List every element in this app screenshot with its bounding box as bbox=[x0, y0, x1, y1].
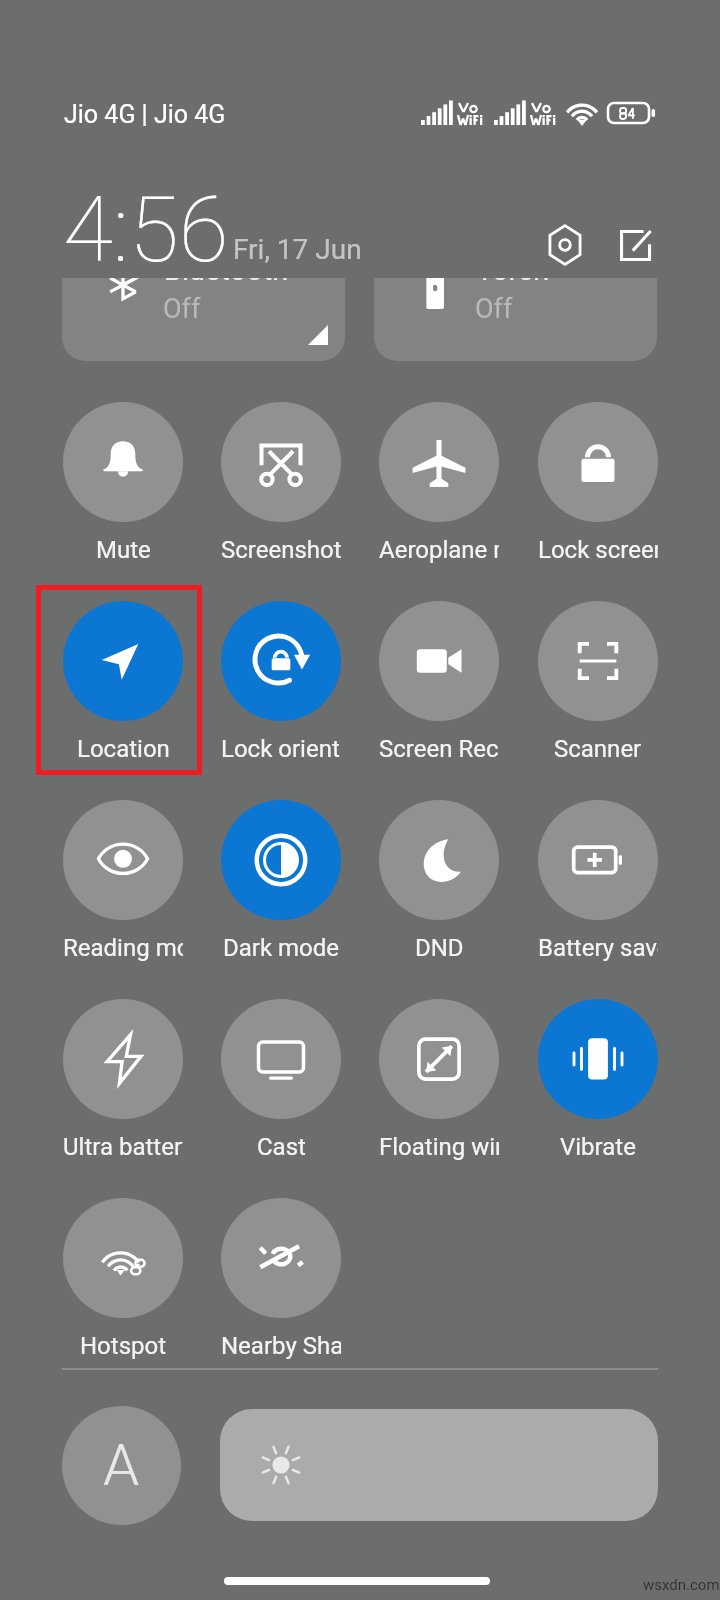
staticText: Scanner bbox=[554, 735, 642, 763]
button[interactable]: Hotspot bbox=[63, 1198, 183, 1360]
staticText: Bluetooth bbox=[164, 278, 289, 287]
button[interactable]: Screenshot bbox=[221, 402, 341, 564]
staticText: Screenshot bbox=[221, 536, 341, 564]
staticText: 4:56 bbox=[63, 177, 229, 284]
button[interactable]: Lock screen bbox=[538, 402, 658, 564]
staticText: Nearby Share bbox=[221, 1332, 341, 1360]
staticText: Lock screen bbox=[538, 536, 658, 564]
button[interactable]: Cast bbox=[221, 999, 341, 1161]
staticText: Fri, 17 Jun bbox=[233, 233, 362, 266]
button[interactable]: Dark mode bbox=[221, 800, 341, 962]
staticText: Lock orientation bbox=[221, 735, 341, 763]
button[interactable]: Settings bbox=[537, 217, 593, 273]
staticText: Dark mode bbox=[223, 934, 340, 962]
staticText: Off bbox=[163, 293, 201, 325]
staticText: Ultra battery saver bbox=[63, 1133, 183, 1161]
staticText: Battery saver bbox=[538, 934, 658, 962]
button[interactable]: Battery saver bbox=[538, 800, 658, 962]
button[interactable]: Lock orientation bbox=[221, 601, 341, 763]
staticText: Location bbox=[77, 735, 170, 763]
button[interactable]: Auto brightness bbox=[62, 1406, 181, 1525]
staticText: Jio 4G | Jio 4G bbox=[64, 100, 226, 129]
button[interactable]: Ultra battery saver bbox=[63, 999, 183, 1161]
staticText: Off bbox=[475, 293, 513, 325]
button[interactable]: Scanner bbox=[538, 601, 658, 763]
staticText: wsxdn.com bbox=[643, 1576, 720, 1594]
button[interactable]: Edit bbox=[607, 217, 663, 273]
button[interactable]: Bluetooth bbox=[62, 278, 345, 361]
button[interactable]: Aeroplane mode bbox=[379, 402, 499, 564]
button[interactable]: Vibrate bbox=[538, 999, 658, 1161]
staticText: Vibrate bbox=[560, 1133, 636, 1161]
staticText: Aeroplane mode bbox=[379, 536, 499, 564]
button[interactable]: Screen Recorder bbox=[379, 601, 499, 763]
staticText: Floating windows bbox=[379, 1133, 499, 1161]
button[interactable]: Nearby Share bbox=[221, 1198, 341, 1360]
staticText: Reading mode bbox=[63, 934, 183, 962]
button[interactable]: Torch bbox=[374, 278, 657, 361]
button[interactable]: Location bbox=[63, 601, 183, 763]
staticText: Torch bbox=[476, 278, 550, 287]
staticText: Hotspot bbox=[80, 1332, 167, 1360]
button[interactable]: Floating windows bbox=[379, 999, 499, 1161]
button[interactable]: Reading mode bbox=[63, 800, 183, 962]
staticText: Screen Recorder bbox=[379, 735, 499, 763]
staticText: A bbox=[103, 1431, 140, 1499]
staticText: Cast bbox=[257, 1133, 306, 1161]
staticText: Mute bbox=[96, 536, 151, 564]
button[interactable]: Mute bbox=[63, 402, 183, 564]
button[interactable]: Brightness bbox=[220, 1409, 658, 1521]
button[interactable]: DND bbox=[379, 800, 499, 962]
staticText: DND bbox=[415, 934, 464, 962]
